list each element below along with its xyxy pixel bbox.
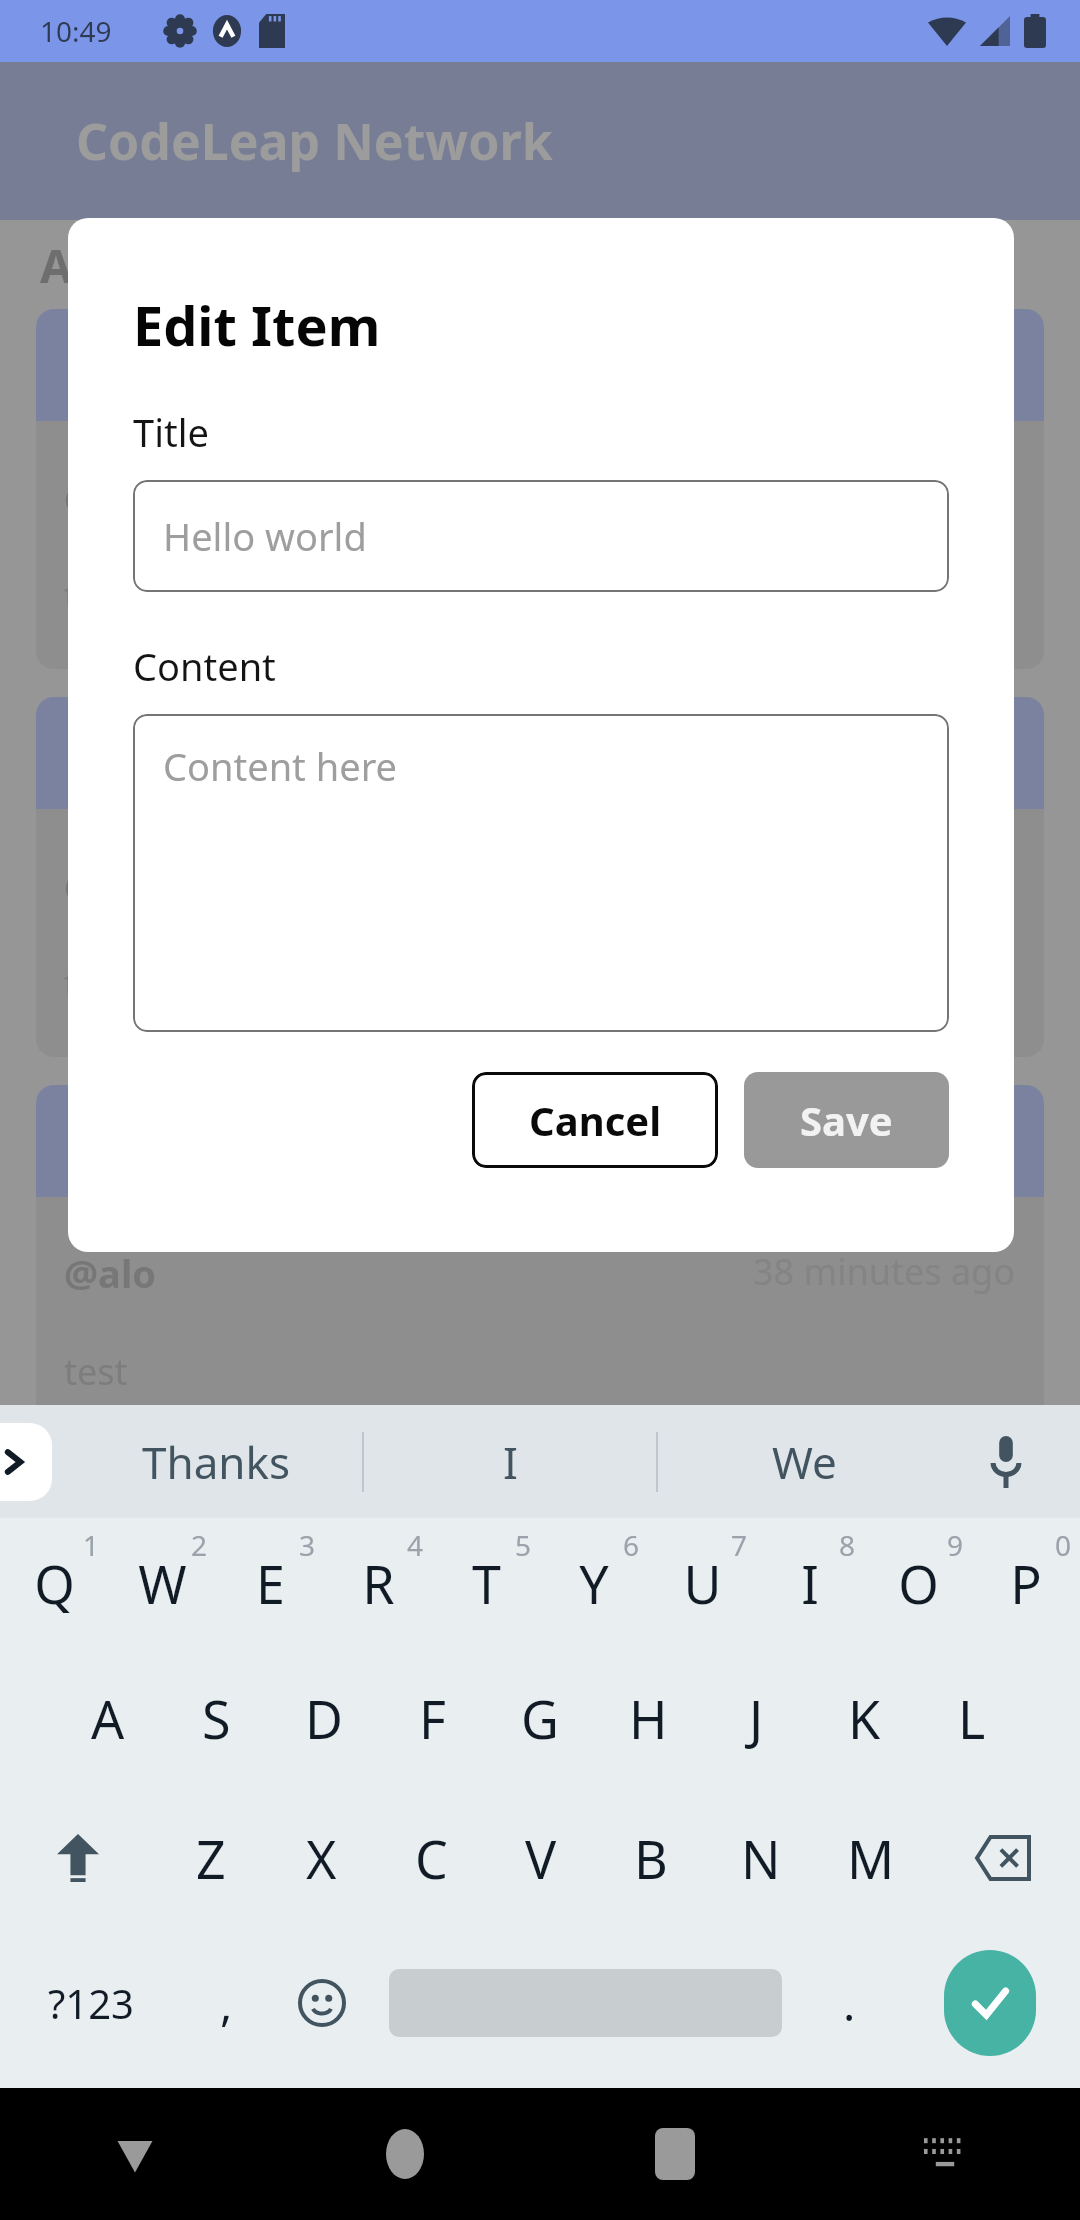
staticText: 4	[407, 1526, 424, 1564]
button[interactable]: A	[54, 1648, 162, 1788]
staticText: test	[64, 959, 128, 1008]
button[interactable]: Back	[0, 2088, 270, 2220]
staticText: Content here	[163, 740, 398, 792]
button[interactable]: G	[486, 1648, 594, 1788]
button[interactable]: Home	[270, 2088, 540, 2220]
staticText: 38 minutes ago	[753, 1247, 1016, 1296]
button[interactable]: W	[108, 1518, 216, 1648]
staticText: 9	[947, 1526, 964, 1564]
button[interactable]: Expand suggestions	[0, 1423, 52, 1501]
staticText: @alo	[64, 1247, 156, 1299]
button[interactable]: @alo	[36, 697, 1044, 1057]
staticText: 3	[299, 1526, 316, 1564]
button[interactable]: I	[364, 1405, 656, 1518]
button[interactable]: P	[972, 1518, 1080, 1648]
staticText: Hello world	[163, 510, 367, 562]
staticText: J	[749, 1683, 764, 1754]
button[interactable]: Y	[540, 1518, 648, 1648]
button[interactable]: T	[432, 1518, 540, 1648]
button[interactable]: C	[376, 1788, 486, 1928]
button[interactable]: V	[486, 1788, 596, 1928]
staticText: S	[202, 1683, 231, 1754]
staticText: I	[503, 1432, 518, 1492]
staticText: Y	[579, 1548, 609, 1619]
button[interactable]: ?123	[0, 1928, 181, 2078]
staticText: L	[958, 1683, 986, 1754]
staticText: N	[741, 1823, 781, 1894]
button[interactable]: Thanks	[70, 1405, 362, 1518]
staticText: M	[847, 1823, 895, 1894]
button[interactable]: K	[810, 1648, 918, 1788]
staticText: U	[683, 1548, 722, 1619]
staticText: @alo	[64, 471, 156, 523]
button[interactable]: L	[918, 1648, 1026, 1788]
button[interactable]: Space	[372, 1928, 799, 2078]
staticText: D	[305, 1683, 343, 1754]
button[interactable]: Content here	[133, 714, 949, 1032]
button[interactable]: Cancel	[472, 1072, 718, 1168]
button[interactable]: S	[162, 1648, 270, 1788]
button[interactable]: Save	[744, 1072, 949, 1168]
staticText: R	[362, 1548, 395, 1619]
button[interactable]: Done	[900, 1928, 1080, 2078]
staticText: C	[415, 1823, 448, 1894]
button[interactable]: F	[378, 1648, 486, 1788]
staticText: V	[525, 1823, 557, 1894]
staticText: I	[801, 1548, 819, 1619]
button[interactable]: M	[816, 1788, 926, 1928]
button[interactable]: Backspace	[926, 1788, 1080, 1928]
staticText: ,	[220, 1972, 233, 2035]
button[interactable]: H	[594, 1648, 702, 1788]
staticText: X	[306, 1823, 337, 1894]
button[interactable]: We	[658, 1405, 950, 1518]
button[interactable]: N	[706, 1788, 816, 1928]
staticText: ?123	[48, 1976, 134, 2030]
staticText: 38 minutes ago	[753, 859, 1016, 908]
button[interactable]: @alo	[36, 309, 1044, 669]
staticText: A	[91, 1683, 125, 1754]
staticText: 1	[83, 1526, 100, 1564]
staticText: B	[634, 1823, 668, 1894]
staticText: 10:49	[40, 12, 112, 50]
staticText: K	[848, 1683, 881, 1754]
button[interactable]: X	[266, 1788, 376, 1928]
button[interactable]: @alo	[36, 1085, 1044, 1445]
button[interactable]: Emoji	[271, 1928, 372, 2078]
staticText: 7	[731, 1526, 748, 1564]
staticText: 6	[623, 1526, 640, 1564]
staticText: test	[64, 571, 128, 620]
staticText: 5	[515, 1526, 532, 1564]
staticText: H	[629, 1683, 668, 1754]
button[interactable]: J	[702, 1648, 810, 1788]
button[interactable]: ,	[181, 1928, 271, 2078]
staticText: W	[138, 1548, 187, 1619]
button[interactable]: Voice input	[970, 1426, 1042, 1498]
button[interactable]: U	[648, 1518, 756, 1648]
staticText: 0	[1055, 1526, 1072, 1564]
staticText: @alo	[64, 859, 156, 911]
button[interactable]: R	[324, 1518, 432, 1648]
button[interactable]: Recents	[540, 2088, 810, 2220]
button[interactable]: Q	[0, 1518, 108, 1648]
button[interactable]: E	[216, 1518, 324, 1648]
button[interactable]: Switch keyboard	[810, 2088, 1080, 2220]
staticText: test	[64, 1347, 128, 1396]
button[interactable]: O	[864, 1518, 972, 1648]
button[interactable]: .	[799, 1928, 900, 2078]
button[interactable]: Shift	[0, 1788, 155, 1928]
staticText: 2	[191, 1526, 208, 1564]
button[interactable]: Hello world	[133, 480, 949, 592]
staticText: P	[1010, 1548, 1042, 1619]
staticText: T	[472, 1548, 501, 1619]
button[interactable]: @alo	[36, 1473, 1044, 1833]
button[interactable]: D	[270, 1648, 378, 1788]
staticText: .	[843, 1972, 856, 2035]
staticText: Thanks	[142, 1432, 291, 1492]
staticText: Z	[196, 1823, 226, 1894]
button[interactable]: Z	[155, 1788, 266, 1928]
staticText: 38 minutes ago	[753, 471, 1016, 520]
button[interactable]: B	[596, 1788, 706, 1928]
button[interactable]: I	[756, 1518, 864, 1648]
